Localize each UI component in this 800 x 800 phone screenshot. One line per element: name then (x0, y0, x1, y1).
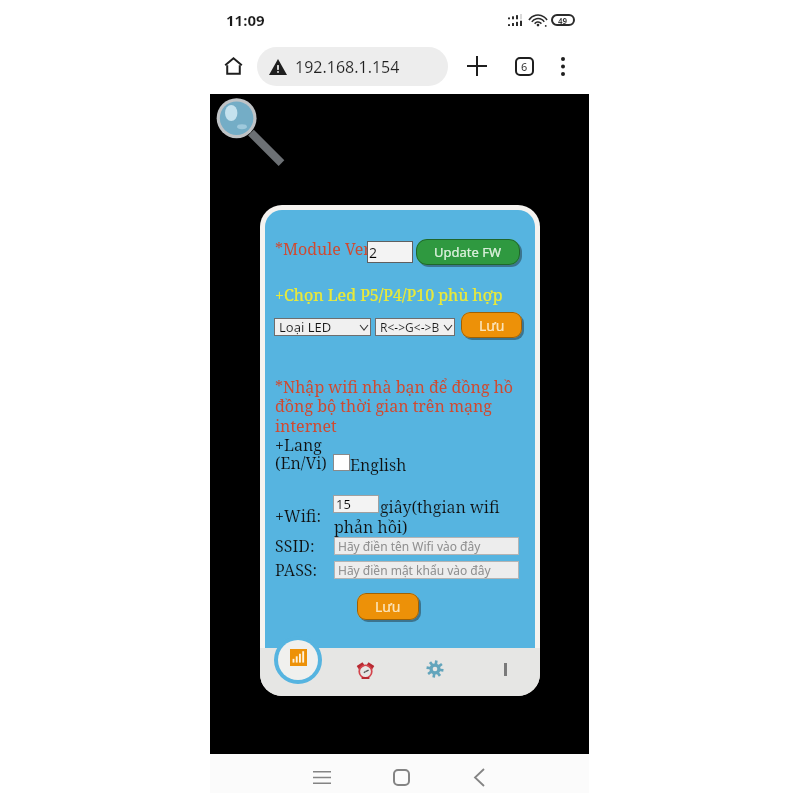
button[interactable]: New tab (460, 49, 494, 83)
staticText: 15 (336, 495, 351, 513)
button[interactable] (333, 454, 350, 471)
staticText: Update FW (434, 243, 502, 261)
button[interactable]: 2 (367, 241, 413, 263)
staticText: 2 (369, 243, 378, 262)
button[interactable]: Recents (303, 759, 341, 795)
button[interactable]: Home (216, 49, 250, 83)
button[interactable]: Info (470, 645, 540, 693)
staticText: +Chọn Led P5/P4/P10 phù hợp (275, 284, 503, 306)
button[interactable]: Tabs (507, 49, 541, 83)
staticText: Hãy điền mật khẩu vào đây (338, 562, 491, 578)
staticText: Lưu (479, 316, 505, 335)
button[interactable]: 15 (333, 495, 379, 513)
button[interactable]: Signal (274, 636, 322, 684)
staticText: SSID: (275, 535, 315, 557)
button[interactable]: Hãy điền tên Wifi vào đây (334, 537, 519, 555)
button[interactable]: Lưu (461, 312, 522, 338)
staticText: 49 (558, 15, 568, 26)
staticText: phản hồi) (334, 516, 408, 538)
button[interactable]: Home (382, 759, 420, 795)
staticText: giây(thgian wifi (380, 496, 500, 518)
staticText: 192.168.1.154 (295, 56, 400, 78)
button[interactable]: Loại LED (274, 318, 371, 336)
staticText: Lưu (375, 597, 401, 616)
button[interactable]: Update FW (416, 239, 520, 265)
button[interactable]: More options (546, 49, 580, 83)
button[interactable]: R<->G<->B (375, 318, 455, 336)
button[interactable]: 192.168.1.154 (257, 47, 448, 86)
button[interactable]: Lưu (357, 593, 419, 620)
button[interactable]: Alarm (330, 645, 400, 693)
staticText: PASS: (275, 559, 318, 581)
staticText: English (350, 454, 407, 476)
button[interactable]: Signal (260, 645, 330, 693)
staticText: 11:09 (226, 10, 265, 30)
staticText: +Wifi: (275, 505, 322, 527)
staticText: Loại LED (279, 318, 332, 336)
staticText: +Lang (En/Vi) (275, 434, 327, 474)
staticText: R<->G<->B (380, 319, 440, 335)
staticText: 6 (521, 59, 528, 74)
staticText: *Module Ver (275, 238, 371, 260)
staticText: *Nhập wifi nhà bạn để đồng hồ đồng bộ th… (275, 376, 514, 437)
button[interactable]: Settings (400, 645, 470, 693)
staticText: Hãy điền tên Wifi vào đây (338, 538, 481, 554)
button[interactable]: Hãy điền mật khẩu vào đây (334, 561, 519, 579)
button[interactable]: Back (460, 759, 498, 795)
